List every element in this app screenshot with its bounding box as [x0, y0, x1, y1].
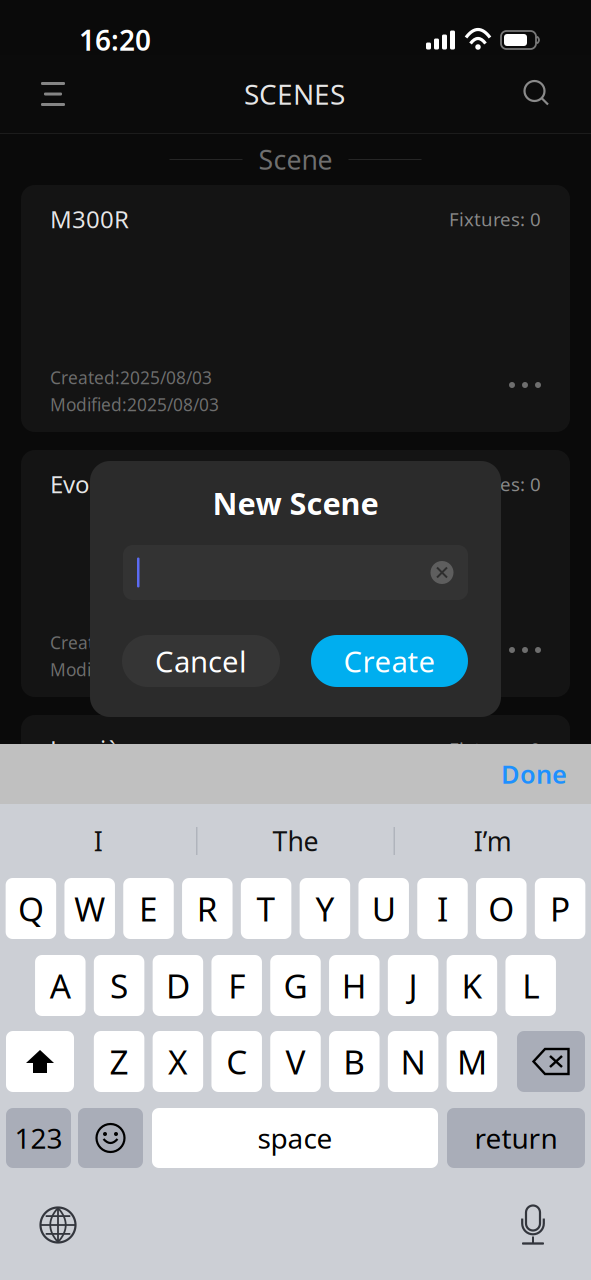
- button[interactable]: S: [94, 955, 144, 1016]
- staticText: N: [401, 1039, 426, 1084]
- staticText: V: [285, 1039, 305, 1084]
- staticText: U: [372, 886, 396, 931]
- staticText: Done: [501, 757, 567, 791]
- staticText: I’m: [474, 823, 512, 859]
- button[interactable]: Emoji: [78, 1108, 143, 1168]
- button[interactable]: Done: [477, 745, 591, 803]
- button[interactable]: 123: [6, 1108, 71, 1168]
- staticText: 16:20: [79, 21, 151, 59]
- button[interactable]: Dictation: [496, 1197, 570, 1253]
- staticText: Q: [18, 886, 44, 931]
- staticText: R: [197, 886, 218, 931]
- staticText: P: [550, 886, 570, 931]
- staticText: Evoke: [50, 468, 117, 500]
- staticText: W: [74, 886, 105, 931]
- button[interactable]: H: [329, 955, 380, 1016]
- staticText: Scene: [258, 142, 332, 177]
- staticText: Fixtures: 0: [449, 736, 541, 761]
- staticText: Created:2025/08/03: [50, 631, 212, 654]
- button[interactable]: Evoke: [21, 450, 570, 697]
- staticText: M: [457, 1039, 487, 1084]
- staticText: Lumière: [50, 733, 143, 765]
- button[interactable]: G: [270, 955, 321, 1016]
- staticText: SCENES: [244, 75, 345, 113]
- staticText: D: [166, 963, 190, 1008]
- button[interactable]: A: [35, 955, 86, 1016]
- button[interactable]: W: [64, 878, 115, 939]
- button[interactable]: C: [211, 1031, 262, 1092]
- staticText: Modified:2025/08/03: [50, 658, 219, 681]
- button[interactable]: F: [211, 955, 262, 1016]
- staticText: L: [522, 963, 539, 1008]
- staticText: Created:2025/08/03: [50, 896, 212, 919]
- staticText: F: [228, 963, 245, 1008]
- button[interactable]: D: [153, 955, 203, 1016]
- button[interactable]: T: [241, 878, 291, 939]
- staticText: Z: [110, 1039, 129, 1084]
- staticText: C: [226, 1039, 247, 1084]
- staticText: Fixtures: 0: [449, 206, 541, 231]
- button[interactable]: Search: [508, 65, 566, 123]
- button[interactable]: U: [358, 878, 409, 939]
- staticText: T: [257, 886, 276, 931]
- button[interactable]: I: [417, 878, 468, 939]
- button[interactable]: Cancel: [122, 635, 280, 687]
- staticText: A: [50, 963, 71, 1008]
- button[interactable]: P: [535, 878, 585, 939]
- staticText: I: [94, 823, 103, 859]
- button[interactable]: Delete: [517, 1031, 585, 1092]
- staticText: J: [409, 963, 418, 1008]
- staticText: M300R: [50, 203, 129, 235]
- button[interactable]: M: [447, 1031, 497, 1092]
- staticText: K: [461, 963, 482, 1008]
- button[interactable]: R: [182, 878, 232, 939]
- staticText: X: [168, 1039, 188, 1084]
- button[interactable]: I’m: [395, 804, 591, 878]
- button[interactable]: space: [152, 1108, 438, 1168]
- button[interactable]: Create: [311, 635, 468, 687]
- staticText: E: [139, 886, 158, 931]
- staticText: Cancel: [155, 641, 247, 680]
- staticText: I: [437, 886, 448, 931]
- staticText: Modified:2025/08/03: [50, 923, 219, 946]
- staticText: Y: [315, 886, 334, 931]
- button[interactable]: K: [447, 955, 497, 1016]
- button[interactable]: B: [329, 1031, 380, 1092]
- button[interactable]: Lumière: [21, 715, 570, 962]
- staticText: S: [110, 963, 128, 1008]
- staticText: Created:2025/08/03: [50, 366, 212, 389]
- button[interactable]: Y: [300, 878, 350, 939]
- staticText: G: [283, 963, 307, 1008]
- button[interactable]: Shift: [6, 1031, 74, 1092]
- staticText: New Scene: [212, 483, 378, 523]
- button[interactable]: Q: [6, 878, 56, 939]
- button[interactable]: Next keyboard: [21, 1197, 95, 1253]
- button[interactable]: Z: [94, 1031, 144, 1092]
- button[interactable]: J: [388, 955, 438, 1016]
- button[interactable]: X: [153, 1031, 203, 1092]
- staticText: 123: [14, 1119, 62, 1157]
- staticText: space: [257, 1119, 332, 1157]
- button[interactable]: N: [388, 1031, 438, 1092]
- button[interactable]: E: [123, 878, 174, 939]
- button[interactable]: M300R: [21, 185, 570, 432]
- button[interactable]: I: [0, 804, 196, 878]
- staticText: return: [474, 1119, 557, 1157]
- staticText: Fixtures: 0: [449, 471, 541, 496]
- staticText: O: [488, 886, 514, 931]
- staticText: B: [343, 1039, 365, 1084]
- button[interactable]: return: [447, 1108, 585, 1168]
- staticText: H: [342, 963, 367, 1008]
- button[interactable]: The: [197, 804, 394, 878]
- staticText: Create: [343, 641, 435, 680]
- button[interactable]: L: [505, 955, 556, 1016]
- button[interactable]: V: [270, 1031, 321, 1092]
- staticText: The: [272, 823, 318, 859]
- button[interactable]: Menu: [25, 66, 81, 122]
- button[interactable]: O: [476, 878, 527, 939]
- button[interactable]: Clear text: [427, 557, 457, 587]
- staticText: Modified:2025/08/03: [50, 393, 219, 416]
